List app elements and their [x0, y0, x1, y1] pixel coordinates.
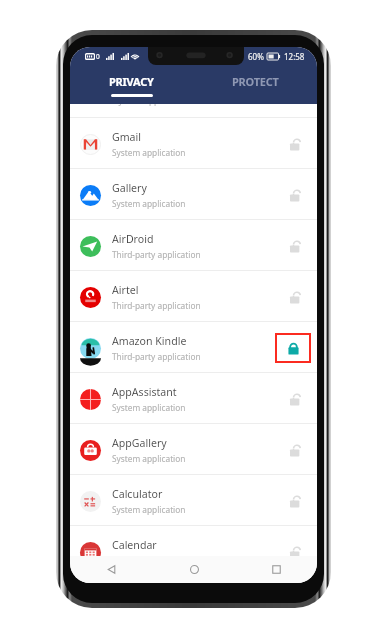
button[interactable]: AirDroid	[70, 220, 317, 271]
button[interactable]: Home	[153, 556, 235, 583]
button[interactable]: Gmail	[70, 118, 317, 169]
button[interactable]: AppAssistant	[70, 373, 317, 424]
staticText: PROTECT	[232, 74, 279, 89]
staticText: Third-party application	[112, 351, 201, 362]
button[interactable]: Unlocked	[281, 129, 311, 159]
button[interactable]: Locked	[275, 333, 311, 363]
staticText: Third-party application	[112, 249, 201, 260]
staticText: AppGallery	[112, 436, 167, 450]
staticText: Third-party application	[112, 300, 201, 311]
button[interactable]: Amazon Kindle	[70, 322, 317, 373]
staticText: System application	[114, 104, 188, 106]
staticText: PRIVACY	[109, 74, 154, 89]
button[interactable]: Unlocked	[281, 537, 311, 556]
staticText: System application	[112, 453, 186, 464]
staticText: System application	[112, 147, 186, 158]
staticText: AppAssistant	[112, 385, 177, 399]
button[interactable]: PROTECT	[193, 65, 317, 94]
staticText: Airtel	[112, 283, 139, 297]
staticText: AirDroid	[112, 232, 154, 246]
button[interactable]: Airtel	[70, 271, 317, 322]
button[interactable]: Calculator	[70, 475, 317, 526]
button[interactable]: PRIVACY	[70, 65, 193, 97]
staticText: 0	[96, 52, 100, 61]
button[interactable]: Unlocked	[281, 384, 311, 414]
button[interactable]: Unlocked	[281, 486, 311, 516]
button[interactable]: Recents	[235, 556, 317, 583]
button[interactable]: Unlocked	[281, 231, 311, 261]
staticText: Calendar	[112, 538, 157, 552]
staticText: System application	[112, 504, 186, 515]
button[interactable]: AppGallery	[70, 424, 317, 475]
button[interactable]: Unlocked	[281, 282, 311, 312]
staticText: System application	[112, 402, 186, 413]
button[interactable]: Gallery	[70, 169, 317, 220]
staticText: Gmail	[112, 130, 142, 144]
staticText: Gallery	[112, 181, 147, 195]
button[interactable]: Unlocked	[281, 180, 311, 210]
staticText: Calculator	[112, 487, 163, 501]
button[interactable]: Calendar	[70, 526, 317, 556]
staticText: 60%	[248, 51, 264, 62]
staticText: System application	[112, 198, 186, 209]
staticText: Amazon Kindle	[112, 334, 187, 348]
button[interactable]: Back	[70, 556, 153, 583]
staticText: 12:58	[284, 51, 305, 62]
button[interactable]: Unlocked	[281, 435, 311, 465]
